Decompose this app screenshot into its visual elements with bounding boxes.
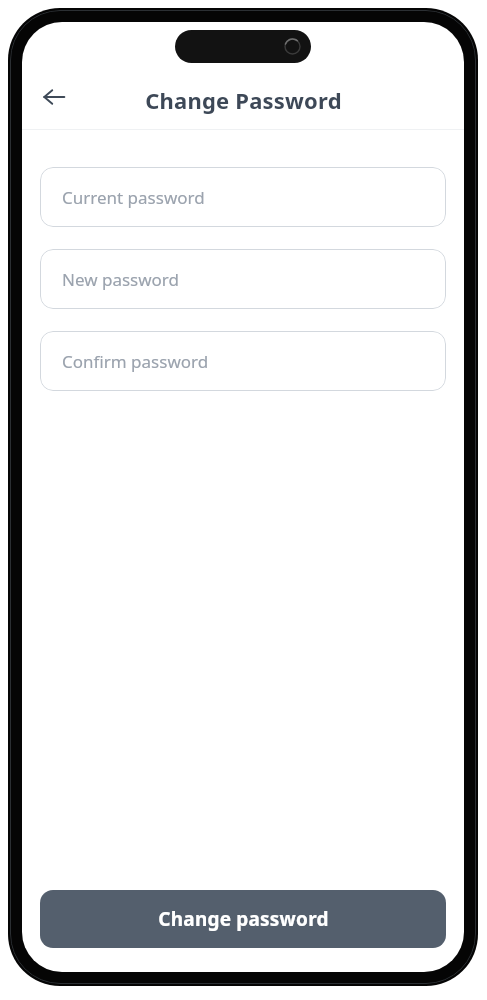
staticText: Confirm password [62,350,209,373]
staticText: Current password [62,186,205,209]
button[interactable]: Current password [40,167,446,227]
staticText: Change Password [145,85,342,115]
button[interactable]: Change password [40,890,446,948]
staticText: Change password [158,906,329,932]
button[interactable]: Back [32,75,76,119]
button[interactable]: Confirm password [40,331,446,391]
staticText: New password [62,268,180,291]
button[interactable]: New password [40,249,446,309]
